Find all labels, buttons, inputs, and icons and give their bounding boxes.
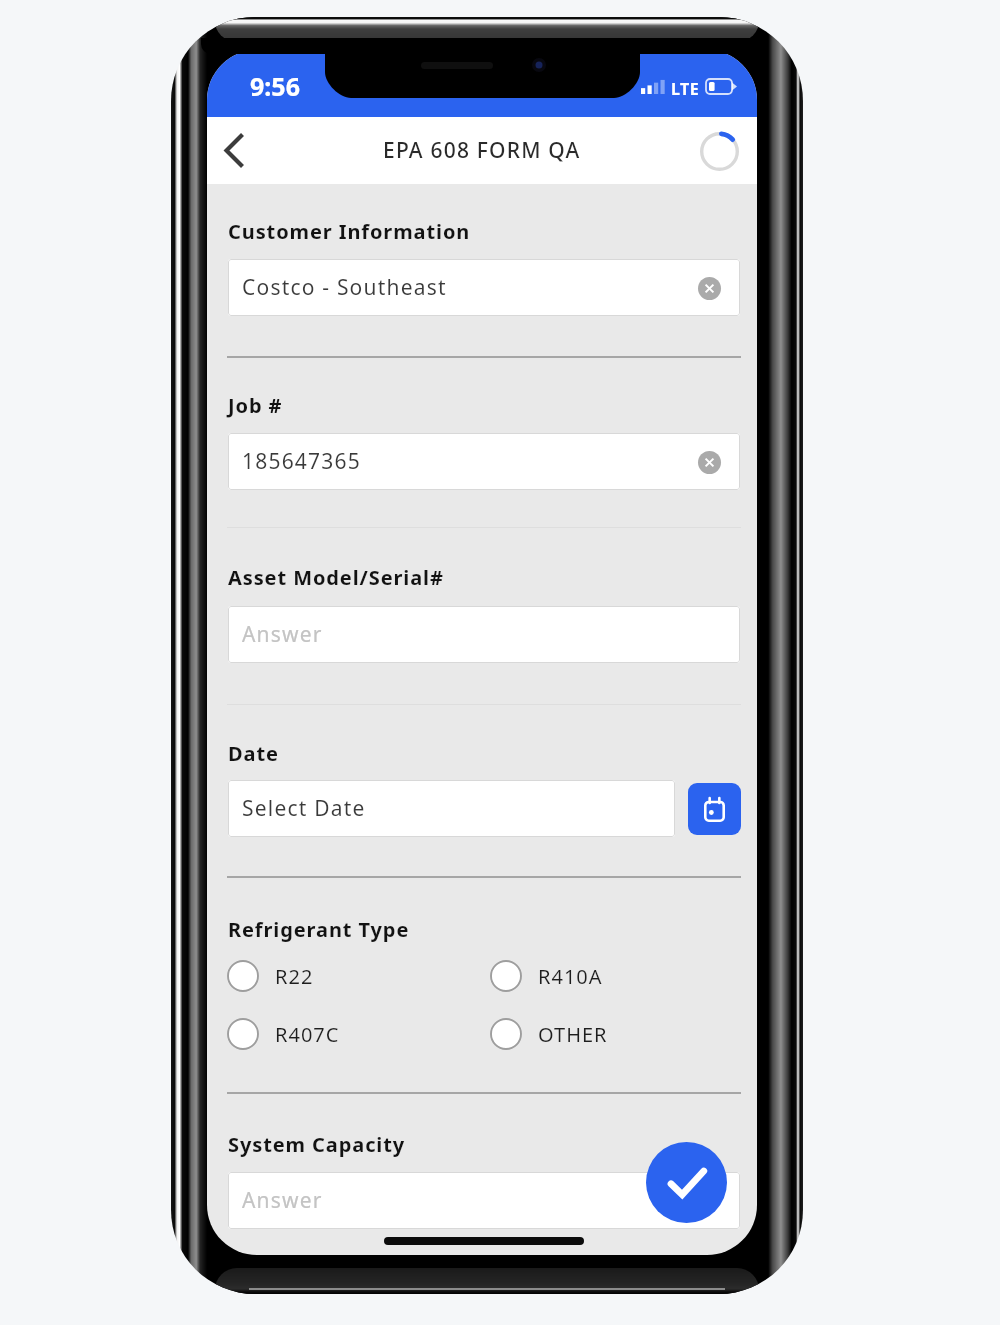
button[interactable]: Submit <box>646 1142 727 1223</box>
staticText: Select Date <box>242 794 366 823</box>
staticText: Answer <box>242 1186 323 1215</box>
button[interactable]: Back <box>207 117 265 184</box>
staticText: Date <box>228 740 279 767</box>
button[interactable]: Clear <box>696 449 722 475</box>
button[interactable]: Clear <box>696 275 722 301</box>
staticText: Refrigerant Type <box>228 916 410 943</box>
button[interactable]: Select Date <box>228 780 675 837</box>
button[interactable]: Select Date <box>688 783 741 835</box>
staticText: Job # <box>228 392 283 419</box>
staticText: R410A <box>538 963 603 990</box>
staticText: 9:56 <box>250 69 300 103</box>
button[interactable]: R22 <box>227 958 407 994</box>
staticText: 185647365 <box>242 447 361 476</box>
button[interactable]: Progress <box>695 127 743 175</box>
staticText: R407C <box>275 1021 340 1048</box>
button[interactable]: 185647365 <box>228 433 740 490</box>
button[interactable]: R410A <box>490 958 670 994</box>
staticText: EPA 608 FORM QA <box>383 136 581 165</box>
button[interactable]: R407C <box>227 1016 407 1052</box>
staticText: Customer Information <box>228 218 471 245</box>
staticText: OTHER <box>538 1021 608 1048</box>
button[interactable]: OTHER <box>490 1016 670 1052</box>
staticText: Answer <box>242 620 323 649</box>
staticText: System Capacity <box>228 1131 406 1158</box>
staticText: LTE <box>671 78 700 100</box>
staticText: R22 <box>275 963 314 990</box>
staticText: Costco - Southeast <box>242 273 447 302</box>
button[interactable]: Costco - Southeast <box>228 259 740 316</box>
button[interactable]: Answer <box>228 1172 740 1229</box>
button[interactable]: Answer <box>228 606 740 663</box>
staticText: Asset Model/Serial# <box>228 564 444 591</box>
